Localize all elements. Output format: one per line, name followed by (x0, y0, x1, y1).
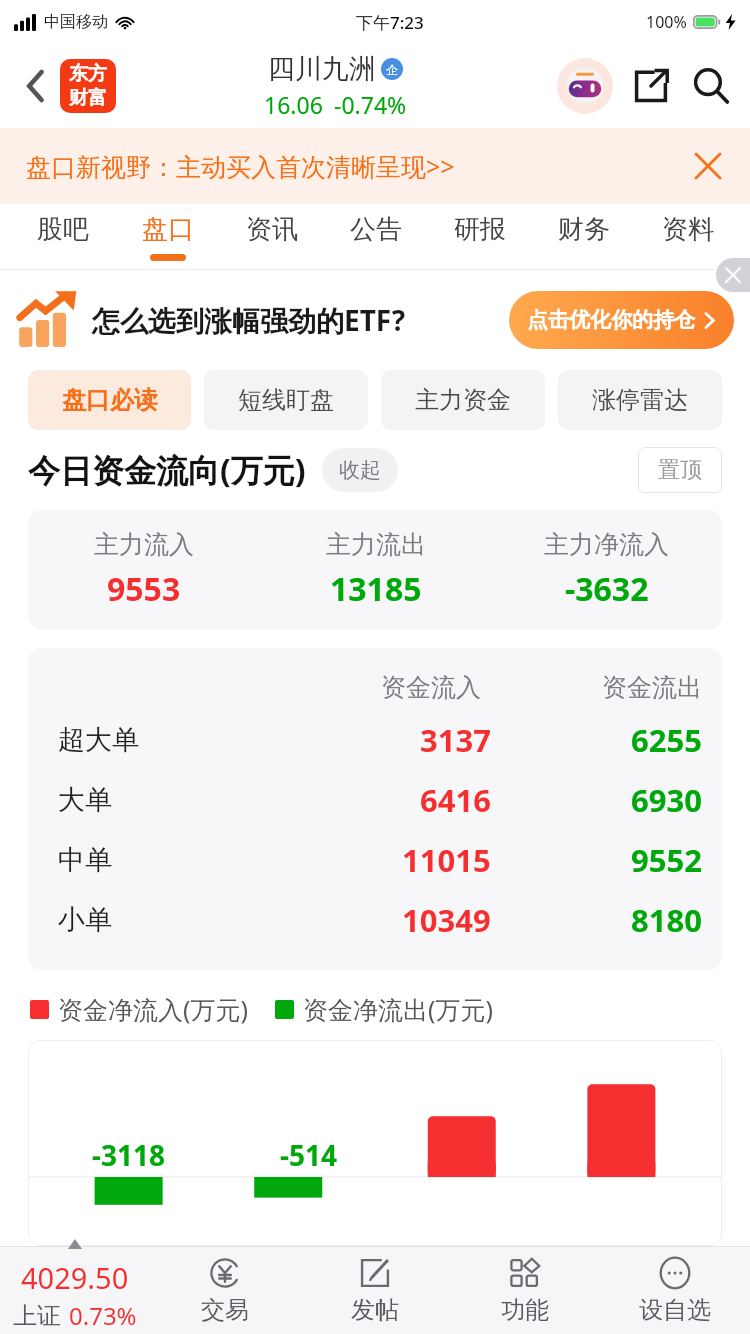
button[interactable]: 关闭广告 (716, 258, 750, 292)
staticText: 6255 (631, 719, 702, 761)
staticText: 资金流出 (602, 672, 702, 703)
staticText: 0.73% (69, 1299, 137, 1332)
button[interactable]: 盘口 (115, 204, 220, 270)
staticText: 中单 (58, 843, 112, 877)
staticText: 4029.50 (21, 1258, 129, 1297)
staticText: 100% (646, 11, 687, 33)
button[interactable]: 主力流入 (28, 510, 722, 630)
staticText: 下午7:23 (356, 11, 424, 34)
staticText: 主力流入 (94, 529, 194, 560)
button[interactable]: 4029.50 (0, 1246, 150, 1334)
button[interactable]: 功能 (450, 1246, 600, 1334)
staticText: 上证 (13, 1301, 61, 1331)
staticText: 公告 (350, 213, 402, 246)
button[interactable]: 分享 (626, 61, 676, 111)
staticText: 点击优化你的持仓 (527, 307, 695, 333)
staticText: 资金流入 (381, 672, 481, 703)
button[interactable]: 发帖 (300, 1246, 450, 1334)
staticText: 设自选 (639, 1295, 711, 1325)
staticText: 短线盯盘 (238, 385, 334, 415)
staticText: 11015 (402, 839, 491, 881)
staticText: 9552 (631, 839, 702, 881)
button[interactable]: AI助手 (556, 57, 614, 115)
staticText: -3118 (92, 1136, 166, 1174)
staticText: 企 (386, 62, 398, 77)
button[interactable]: 盘口新视野：主动买入首次清晰呈现>> (0, 128, 750, 204)
staticText: -3632 (565, 567, 649, 611)
staticText: 8180 (631, 899, 702, 941)
staticText: 四川九洲 (268, 52, 376, 86)
staticText: 财富 (69, 86, 107, 110)
staticText: 13185 (330, 567, 422, 611)
staticText: 怎么选到涨幅强劲的ETF? (92, 301, 406, 339)
button[interactable]: 收起 (322, 448, 398, 492)
staticText: 财务 (558, 213, 610, 246)
staticText: 中国移动 (44, 12, 108, 32)
button[interactable]: 资料 (636, 204, 740, 270)
button[interactable]: 盘口必读 (28, 370, 191, 430)
staticText: 超大单 (58, 723, 139, 757)
staticText: 6930 (631, 779, 702, 821)
button[interactable]: 公告 (324, 204, 428, 270)
staticText: -514 (280, 1136, 338, 1174)
button[interactable]: 关闭 (686, 144, 730, 188)
staticText: 16.06 (264, 89, 323, 120)
staticText: 股吧 (37, 213, 89, 246)
staticText: 功能 (501, 1295, 549, 1325)
staticText: 盘口必读 (62, 385, 158, 415)
staticText: 今日资金流向(万元) (28, 448, 306, 492)
staticText: 资料 (662, 213, 714, 246)
button[interactable]: 短线盯盘 (204, 370, 368, 430)
staticText: 盘口 (142, 213, 194, 246)
button[interactable]: 资金流入 (28, 648, 722, 970)
button[interactable]: 搜索 (686, 61, 736, 111)
staticText: 涨停雷达 (592, 385, 688, 415)
button[interactable]: 返回 (14, 64, 58, 108)
button[interactable]: 东方财富 (60, 59, 116, 113)
button[interactable]: 交易 (150, 1246, 300, 1334)
staticText: 小单 (58, 903, 112, 937)
staticText: 主力净流入 (544, 529, 669, 560)
staticText: 盘口新视野：主动买入首次清晰呈现>> (26, 149, 455, 183)
button[interactable]: 置顶 (638, 447, 722, 493)
staticText: 资金净流出(万元) (303, 992, 494, 1026)
staticText: 6416 (420, 779, 491, 821)
staticText: -0.74% (334, 89, 407, 120)
button[interactable]: 点击优化你的持仓 (509, 291, 734, 349)
button[interactable]: 股吧 (10, 204, 115, 270)
staticText: 大单 (58, 783, 112, 817)
staticText: 置顶 (658, 456, 702, 484)
staticText: 3137 (420, 719, 491, 761)
button[interactable]: 研报 (428, 204, 532, 270)
staticText: 收起 (339, 457, 381, 483)
staticText: 研报 (454, 213, 506, 246)
staticText: 主力资金 (415, 385, 511, 415)
button[interactable]: 主力资金 (381, 370, 545, 430)
button[interactable]: -3118 (28, 1040, 722, 1246)
staticText: 10349 (402, 899, 491, 941)
staticText: 资讯 (246, 213, 298, 246)
staticText: 资金净流入(万元) (58, 992, 249, 1026)
staticText: 东方 (69, 62, 107, 86)
staticText: 发帖 (351, 1295, 399, 1325)
button[interactable]: 财务 (532, 204, 636, 270)
button[interactable]: 资讯 (220, 204, 324, 270)
staticText: 主力流出 (326, 529, 426, 560)
staticText: 9553 (107, 567, 181, 611)
staticText: 交易 (201, 1295, 249, 1325)
button[interactable]: 设自选 (600, 1246, 750, 1334)
button[interactable]: 涨停雷达 (558, 370, 722, 430)
